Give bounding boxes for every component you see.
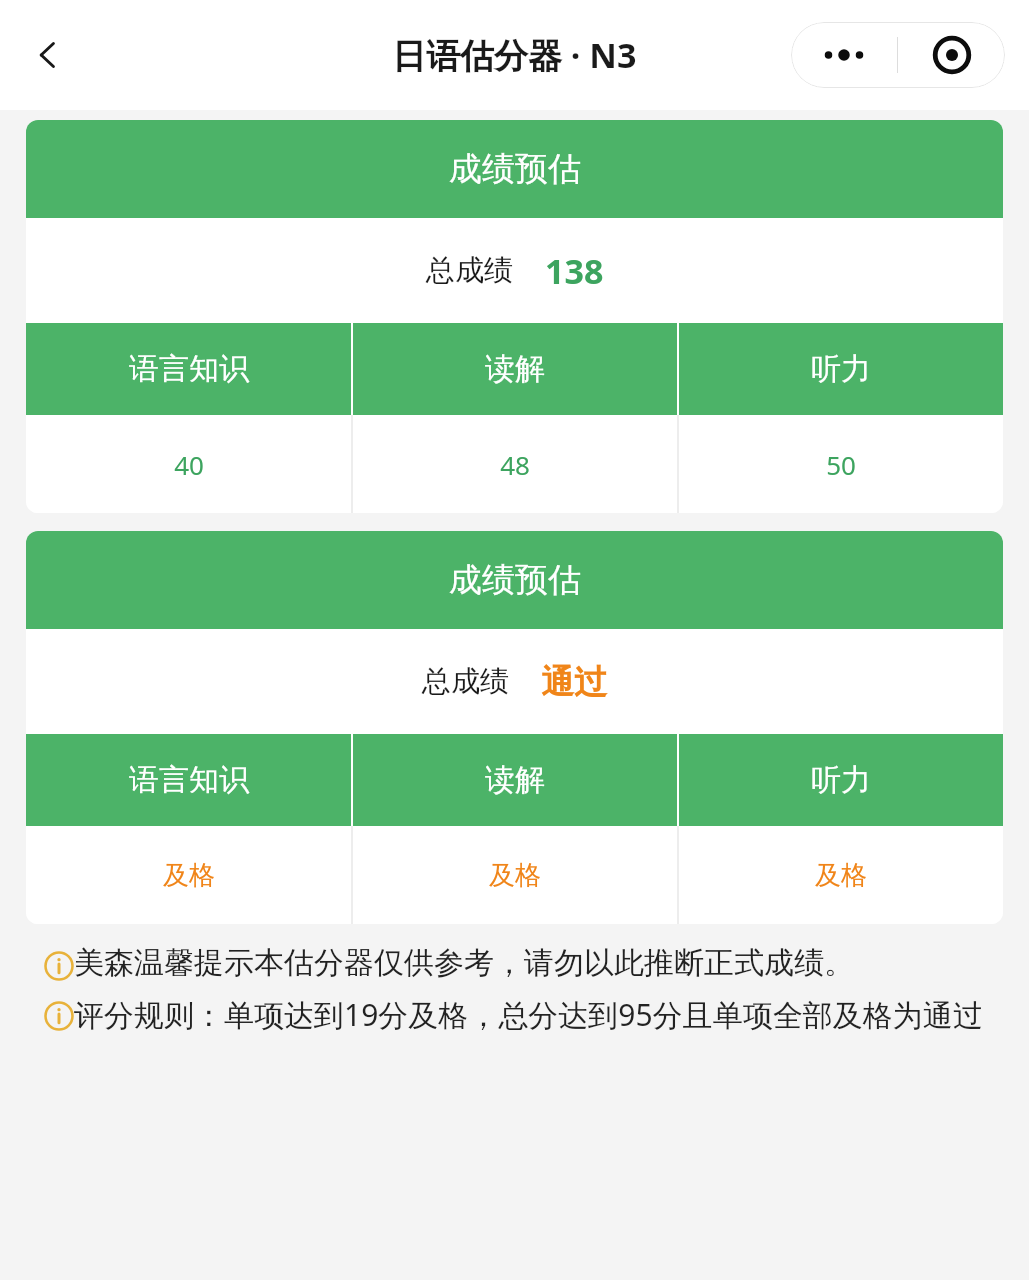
staticText: 40 bbox=[174, 447, 204, 482]
staticText: 听力 bbox=[811, 350, 871, 388]
staticText: 读解 bbox=[485, 350, 545, 388]
staticText: 通过 bbox=[541, 661, 607, 703]
button[interactable]: More bbox=[791, 22, 897, 88]
staticText: 语言知识 bbox=[129, 761, 249, 799]
staticText: 总成绩 bbox=[422, 663, 509, 700]
staticText: 评分规则：单项达到19分及格，总分达到95分且单项全部及格为通过 bbox=[74, 994, 983, 1035]
staticText: 读解 bbox=[485, 761, 545, 799]
button[interactable]: 成绩预估 bbox=[26, 120, 1003, 513]
staticText: 及格 bbox=[163, 859, 215, 892]
staticText: 语言知识 bbox=[129, 350, 249, 388]
button[interactable]: 成绩预估 bbox=[26, 531, 1003, 924]
staticText: 及格 bbox=[489, 859, 541, 892]
staticText: 48 bbox=[500, 447, 530, 482]
staticText: 总成绩 bbox=[426, 252, 513, 289]
staticText: 50 bbox=[826, 447, 856, 482]
button[interactable]: Close bbox=[898, 22, 1005, 88]
staticText: 日语估分器 · N3 bbox=[392, 32, 637, 78]
staticText: 成绩预估 bbox=[449, 148, 581, 190]
staticText: 美森温馨提示本估分器仅供参考，请勿以此推断正式成绩。 bbox=[74, 944, 854, 982]
button[interactable]: Back bbox=[18, 25, 78, 85]
staticText: 138 bbox=[545, 248, 604, 294]
staticText: 听力 bbox=[811, 761, 871, 799]
staticText: 及格 bbox=[815, 859, 867, 892]
staticText: 成绩预估 bbox=[449, 559, 581, 601]
